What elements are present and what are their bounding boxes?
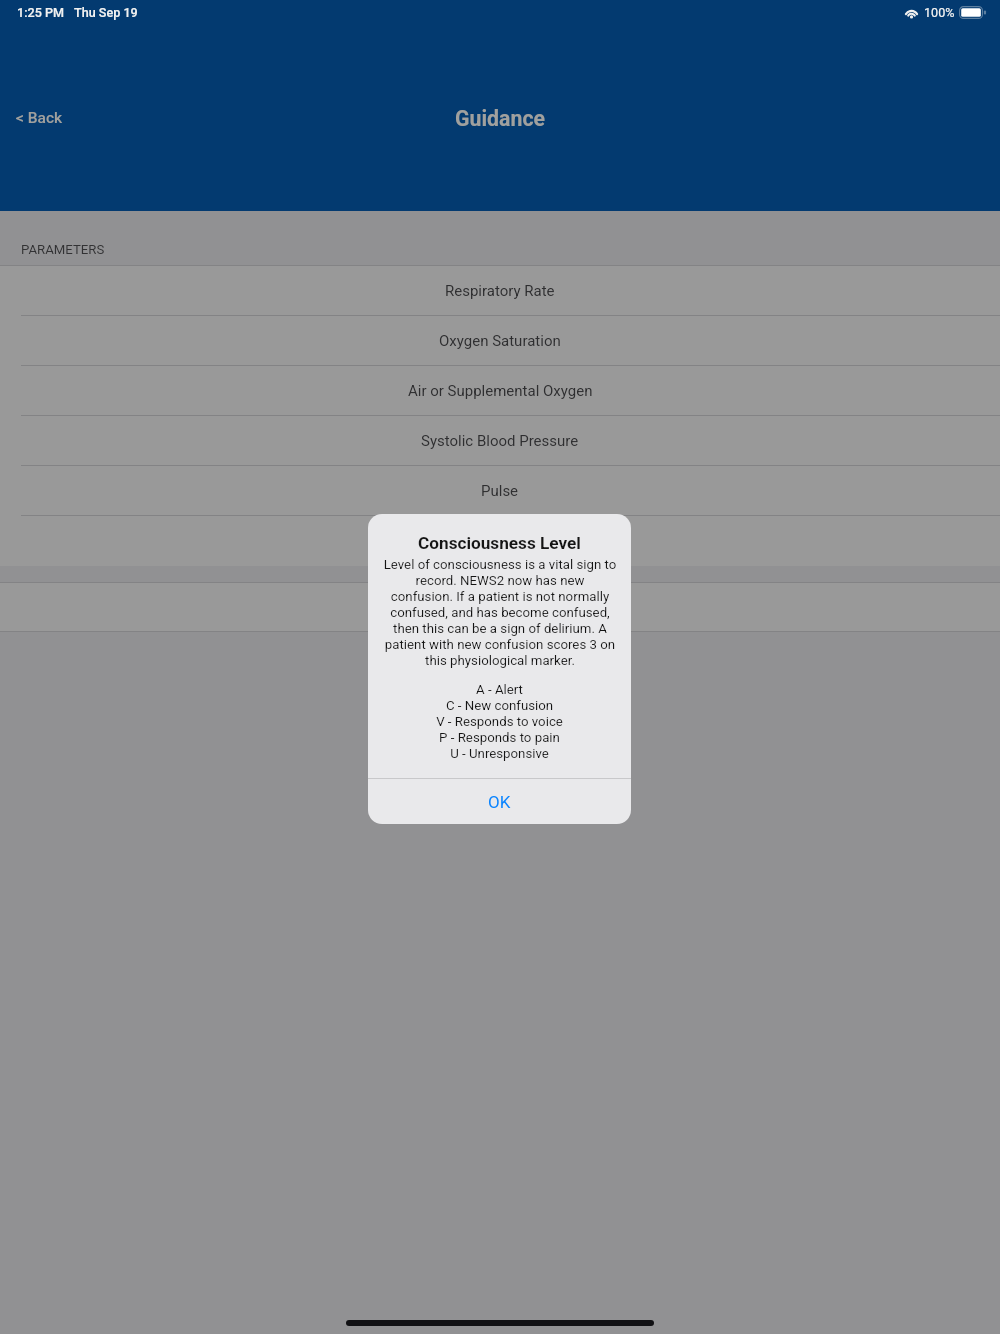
staticText: 100%	[924, 5, 955, 20]
staticText: A - Alert C - New confusion V - Responds…	[436, 682, 563, 762]
staticText: Consciousness Level	[430, 532, 571, 550]
button[interactable]: < Back	[16, 109, 63, 127]
button[interactable]: Systolic Blood Pressure	[0, 416, 1000, 466]
staticText: Air or Supplemental Oxygen	[408, 382, 593, 400]
button[interactable]: Temperature	[0, 583, 1000, 631]
staticText: Guidance	[455, 106, 546, 131]
staticText: Oxygen Saturation	[439, 332, 561, 350]
staticText: Pulse	[481, 482, 519, 500]
staticText: Systolic Blood Pressure	[421, 432, 579, 450]
staticText: PARAMETERS	[21, 242, 105, 257]
button[interactable]: Oxygen Saturation	[0, 316, 1000, 366]
staticText: 1:25 PM	[17, 5, 64, 20]
staticText: Thu Sep 19	[74, 5, 138, 20]
button[interactable]: Pulse	[0, 466, 1000, 516]
button[interactable]: Respiratory Rate	[0, 266, 1000, 316]
button[interactable]: Dismiss dialog	[0, 0, 1000, 1334]
staticText: OK	[488, 792, 511, 812]
button[interactable]: Air or Supplemental Oxygen	[0, 366, 1000, 416]
staticText: < Back	[16, 109, 63, 127]
other: Wi-Fi	[904, 7, 919, 19]
button[interactable]: Consciousness Level	[0, 516, 1000, 566]
staticText: Level of consciousness is a vital sign t…	[383, 557, 617, 669]
staticText: Temperature	[458, 598, 543, 616]
button[interactable]: OK	[368, 779, 631, 824]
staticText: Consciousness Level	[368, 533, 631, 553]
other: Battery 100%	[959, 6, 985, 19]
staticText: Respiratory Rate	[445, 282, 555, 300]
